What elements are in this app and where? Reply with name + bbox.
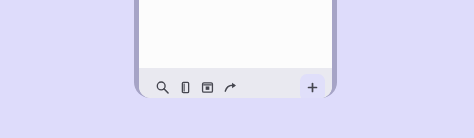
button[interactable]: Add [300,74,325,98]
button[interactable]: Notebook [174,76,196,98]
button[interactable]: Share [219,76,241,98]
button[interactable]: Insert [196,76,218,98]
button[interactable]: Search [151,76,173,98]
